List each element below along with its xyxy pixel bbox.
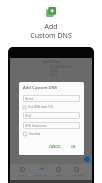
button[interactable]: SITE — [56, 167, 61, 176]
staticText: DNS Hostname — [25, 124, 47, 128]
button[interactable]: SPEED TEST — [34, 167, 48, 176]
button[interactable]: LANGUAGE — [70, 167, 83, 176]
staticText: OK — [71, 145, 76, 149]
staticText: 8.8.4.4 — [50, 73, 59, 77]
staticText: Google Public DNS — [50, 65, 73, 69]
staticText: Use DNS over TLS — [28, 105, 53, 109]
button[interactable]: INFO — [19, 167, 25, 176]
button[interactable]: Name — [23, 95, 80, 102]
button[interactable]: CANCEL — [48, 145, 63, 149]
button[interactable]: Add DNS — [84, 156, 90, 162]
staticText: INFO — [19, 173, 25, 176]
staticText: 8.8.8.8 — [50, 69, 59, 73]
button[interactable]: Use this — [23, 132, 41, 136]
staticText: Add Custom DNS — [30, 22, 72, 40]
staticText: < — [12, 59, 15, 64]
button[interactable]: IPv4 — [23, 112, 80, 119]
staticText: CANCEL — [49, 145, 62, 149]
staticText: Name — [25, 97, 34, 101]
staticText: Use this — [29, 132, 41, 136]
staticText: IPv4 — [25, 114, 32, 118]
button[interactable]: OK — [70, 145, 77, 149]
staticText: LANGUAGE — [70, 173, 83, 176]
button[interactable]: DNS Hostname — [23, 122, 80, 129]
staticText: Speed Test — [42, 59, 61, 64]
staticText: SITE — [56, 173, 61, 176]
staticText: SPEED TEST — [34, 173, 48, 176]
staticText: Add Custom DNS — [23, 85, 58, 91]
button[interactable]: Use DNS over TLS — [23, 105, 53, 109]
